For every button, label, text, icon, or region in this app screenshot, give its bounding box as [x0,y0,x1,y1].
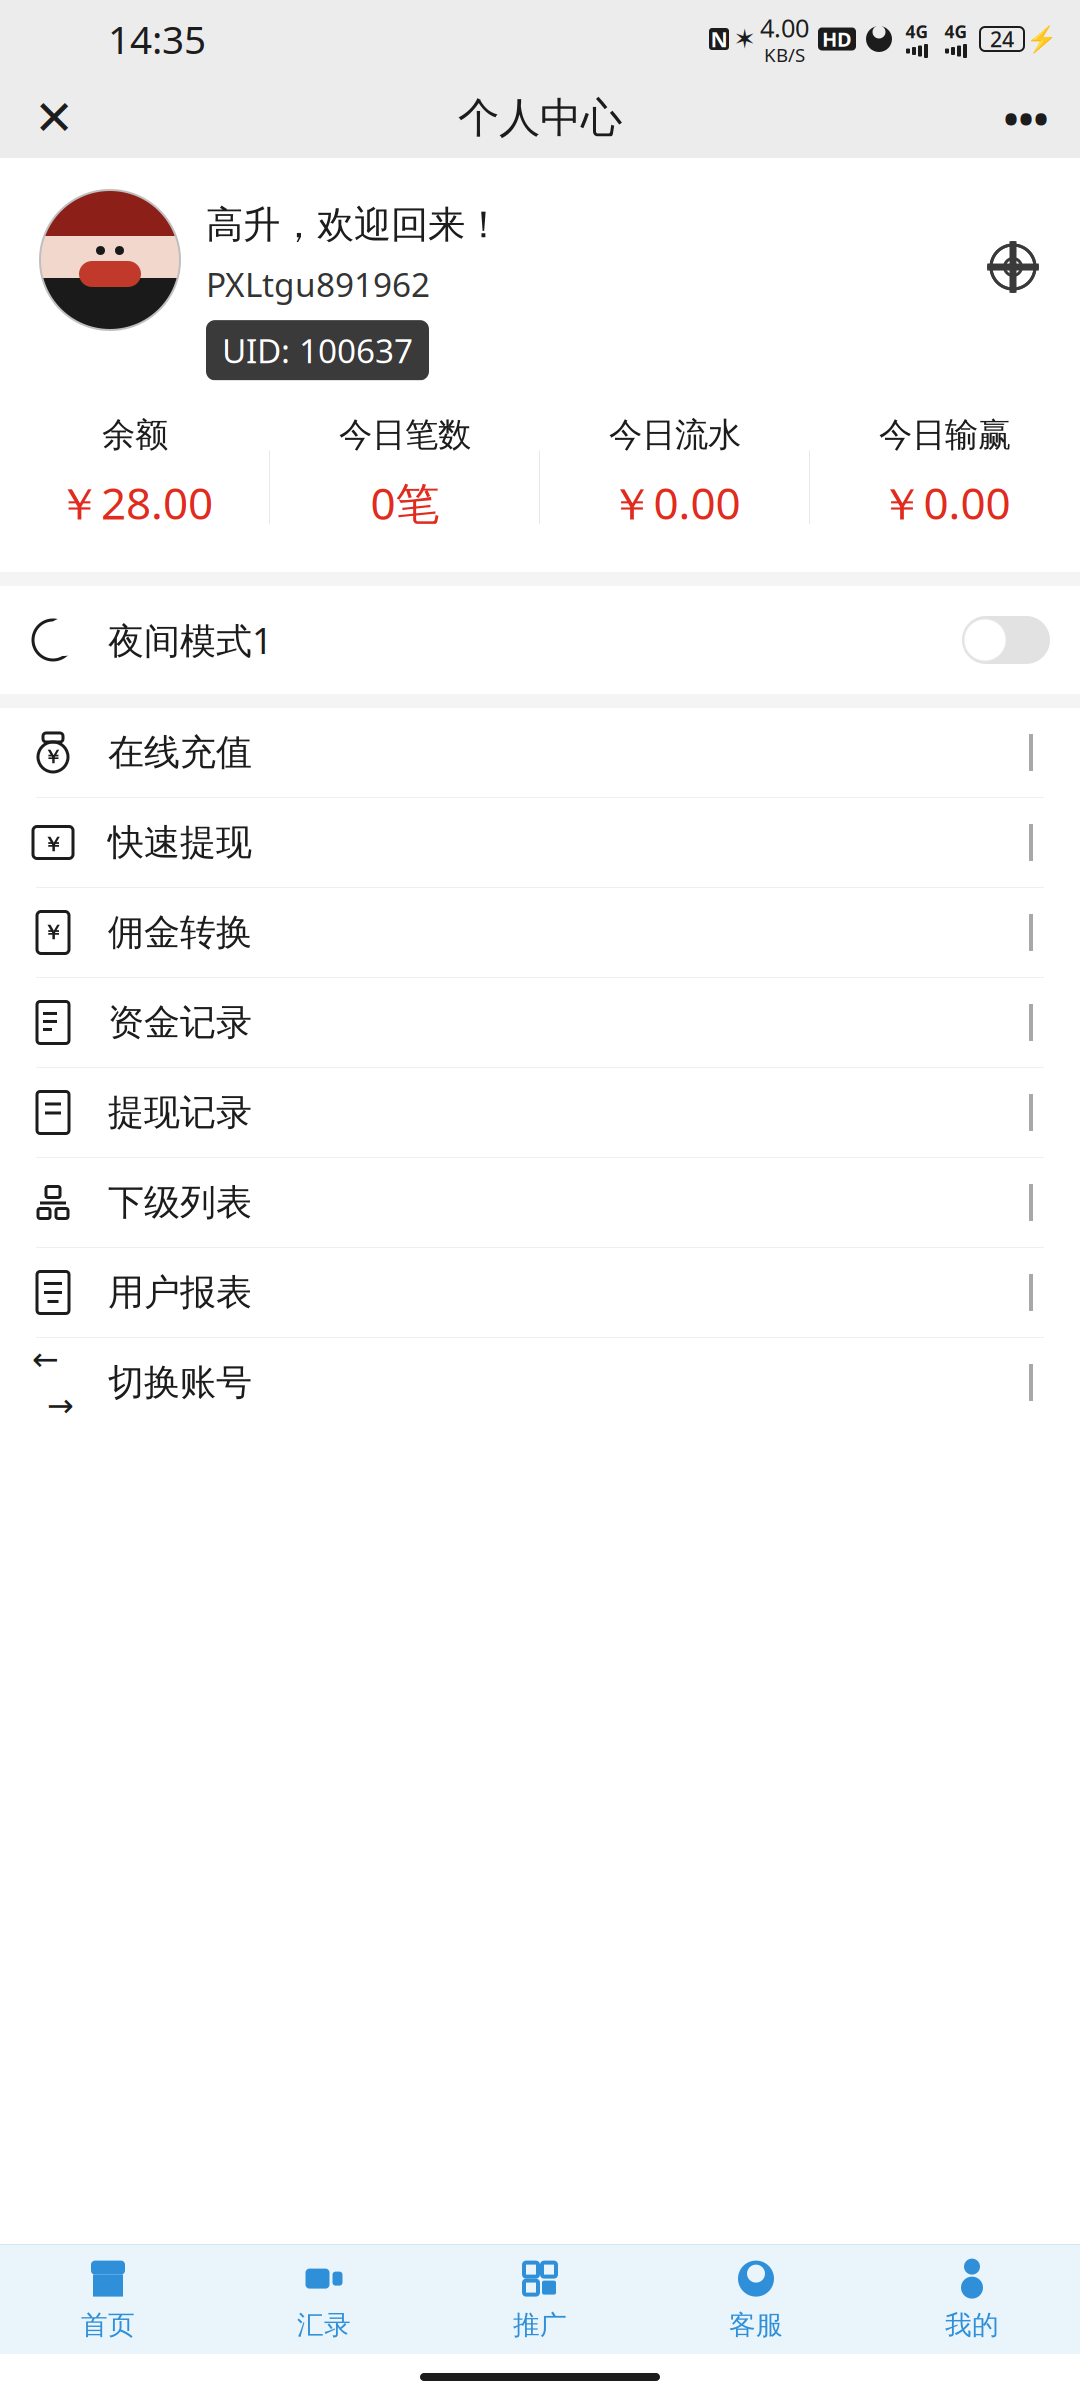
button[interactable]: 夜间模式1 [0,586,1080,694]
staticText: 高升，欢迎回来！ [206,202,502,248]
staticText: 推广 [513,2309,567,2341]
button[interactable]: 首页 [0,2244,216,2354]
staticText: 快速提现 [108,820,252,865]
staticText: 切换账号 [108,1360,252,1405]
staticText: 个人中心 [458,93,622,143]
button[interactable]: 推广 [432,2244,648,2354]
staticText: PXLtgu891962 [206,262,430,306]
button[interactable]: 用户报表 [0,1248,1080,1338]
button[interactable]: ￥ [0,798,1080,888]
staticText: 首页 [81,2309,135,2341]
staticText: 0笔 [370,473,439,532]
staticText: ￥ [43,832,63,857]
staticText: ✕ [34,91,74,145]
staticText: 汇录 [297,2309,351,2341]
staticText: 余额 [102,414,168,455]
staticText: ￥28.00 [57,473,213,532]
button[interactable]: ￥ [0,888,1080,978]
button[interactable]: 下级列表 [0,1158,1080,1248]
staticText: UID: 100637 [222,328,413,372]
staticText: ••• [1003,91,1048,144]
staticText: 今日输赢 [879,414,1011,455]
button[interactable]: 更多 [990,82,1062,154]
staticText: 4G [905,20,928,43]
staticText: 用户报表 [108,1270,252,1315]
staticText: 下级列表 [108,1180,252,1225]
staticText: 佣金转换 [108,910,252,955]
staticText: 我的 [945,2309,999,2341]
staticText: KB/S [764,42,805,67]
staticText: 夜间模式1 [108,616,273,664]
staticText: HD [822,26,852,52]
staticText: 4.00 [760,11,809,44]
button[interactable]: 资金记录 [0,978,1080,1068]
staticText: → [47,1387,74,1424]
staticText: ⚡ [1026,24,1058,53]
staticText: ￥ [43,920,63,945]
staticText: ← [32,1341,59,1377]
staticText: 24 [990,25,1014,53]
staticText: 4G [944,20,967,43]
staticText: N [710,25,727,53]
button[interactable]: 关闭 [18,82,90,154]
staticText: 今日笔数 [339,414,471,455]
staticText: 提现记录 [108,1090,252,1135]
button[interactable]: 设置 [976,230,1050,304]
staticText: 资金记录 [108,1000,252,1045]
button[interactable]: ￥ [0,708,1080,798]
staticText: ￥ [43,745,62,768]
staticText: 在线充值 [108,730,252,775]
staticText: 今日流水 [609,414,741,455]
button[interactable]: 汇录 [216,2244,432,2354]
staticText: 客服 [729,2309,783,2341]
button[interactable]: 我的 [864,2244,1080,2354]
staticText: ￥0.00 [879,473,1010,532]
button[interactable]: ← [0,1338,1080,1427]
staticText: ✶ [733,24,755,54]
button[interactable]: 提现记录 [0,1068,1080,1158]
staticText: 14:35 [108,13,206,65]
staticText: ￥0.00 [609,473,740,532]
button[interactable]: 客服 [648,2244,864,2354]
